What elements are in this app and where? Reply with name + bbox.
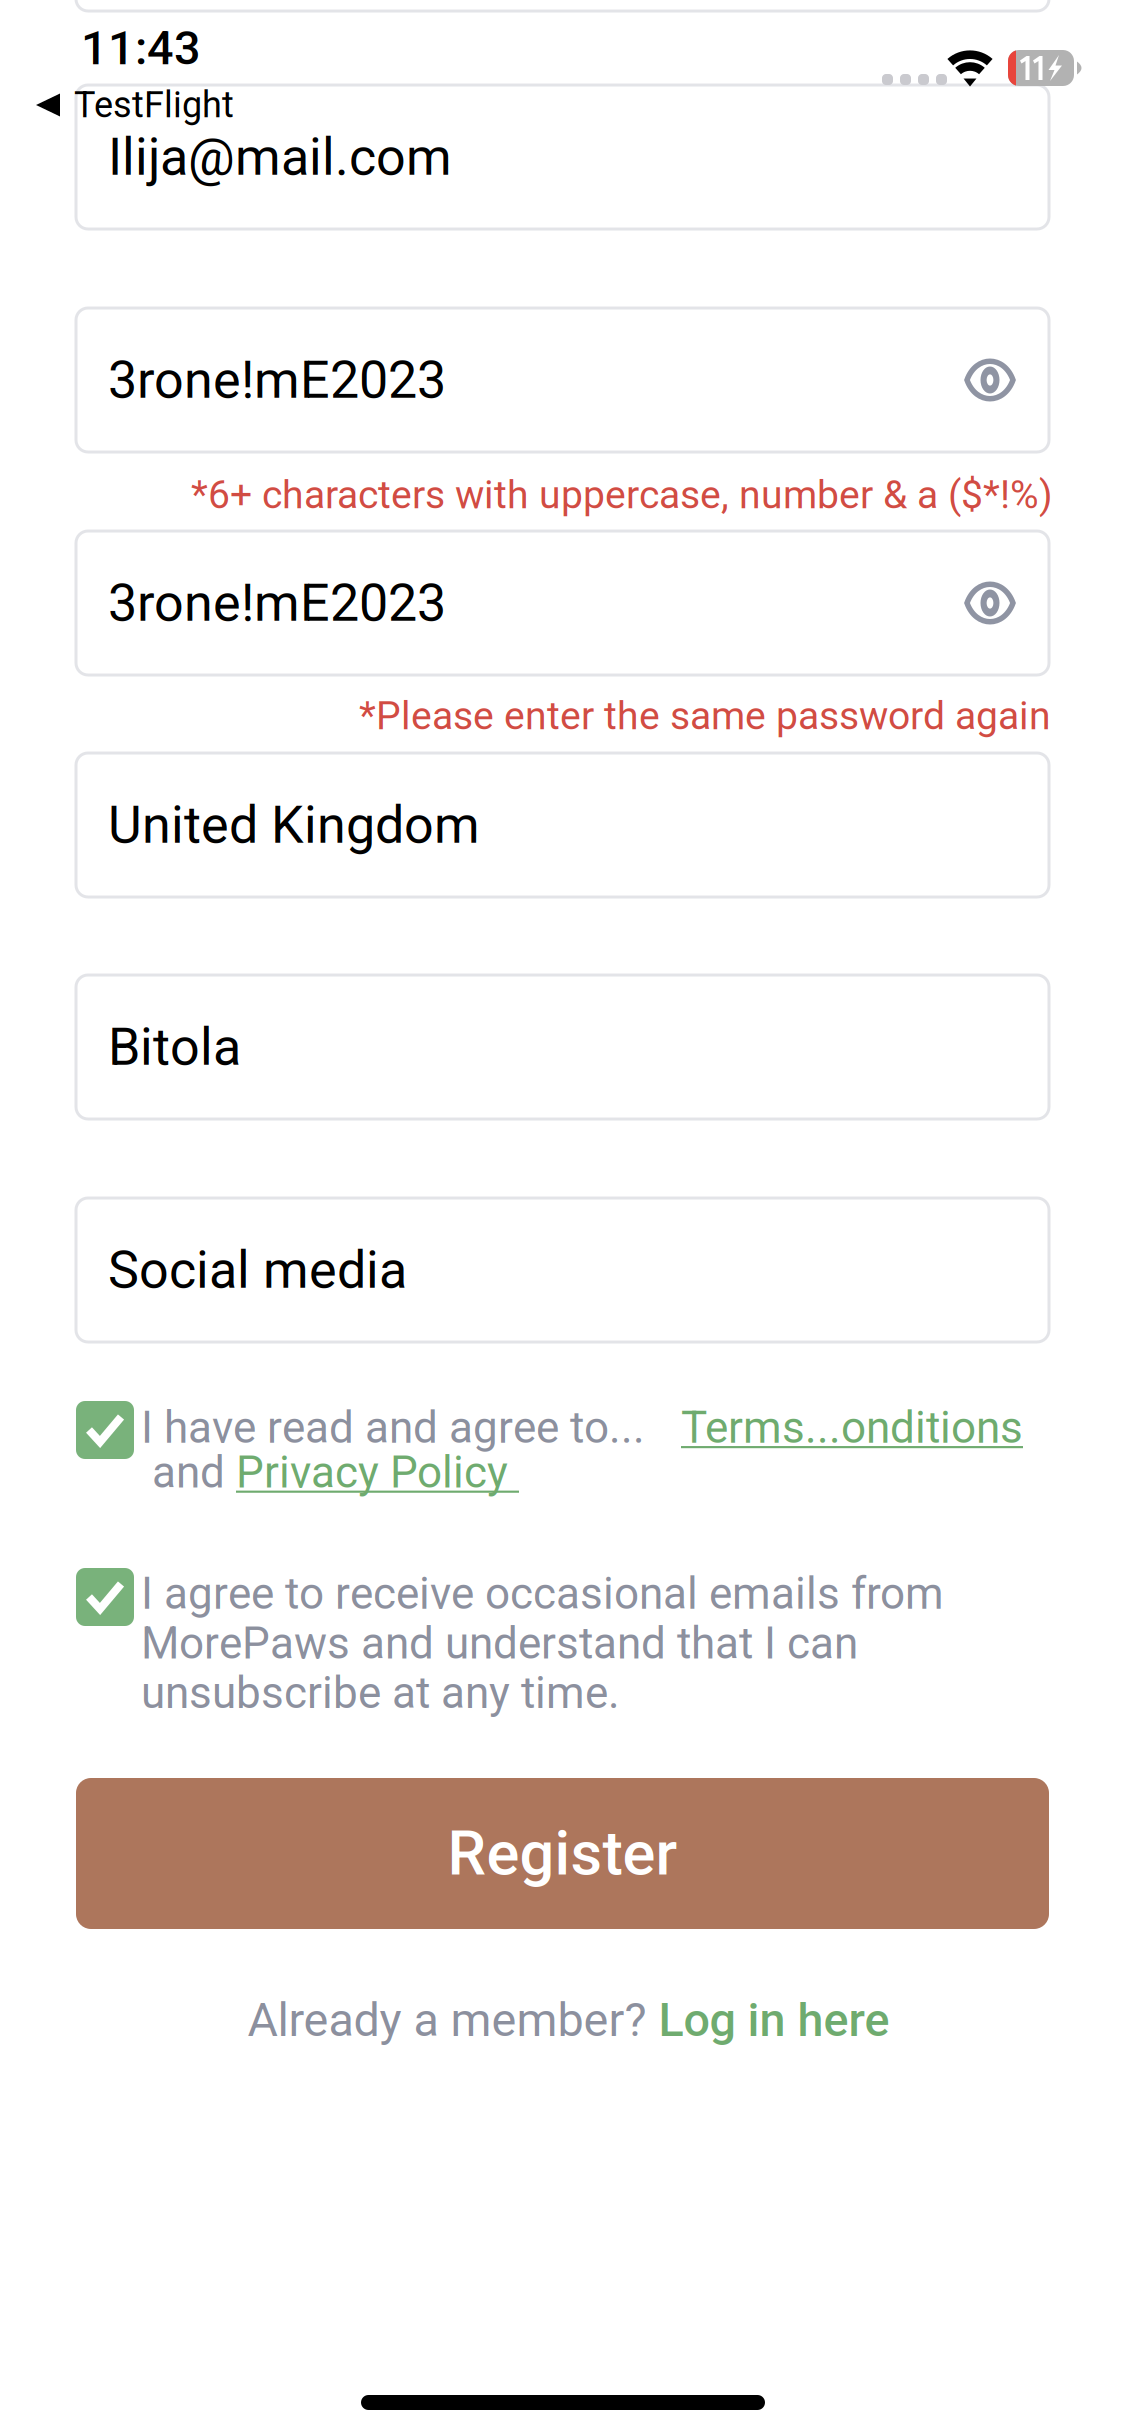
staticText: *Please enter the same password again (359, 693, 1051, 739)
button[interactable]: Already a member? (82, 1989, 1055, 2051)
staticText: Privacy Policy (236, 1447, 519, 1498)
staticText: and (141, 1447, 236, 1498)
staticText: I have read and agree to... (141, 1402, 645, 1454)
staticText: Terms...onditions (681, 1402, 1023, 1454)
staticText: MorePaws and understand that I can (141, 1618, 858, 1669)
staticText: Log in here (658, 1993, 889, 2047)
button[interactable]: Social media (76, 1198, 1049, 1342)
staticText: Register (447, 1818, 677, 1889)
button[interactable]: I have read and agree to... (76, 1401, 1049, 1498)
button[interactable] (76, 0, 1049, 11)
button[interactable]: TestFlight (36, 86, 296, 124)
staticText: I agree to receive occasional emails fro… (141, 1568, 944, 1620)
button[interactable]: I agree to receive occasional emails fro… (76, 1568, 1049, 1719)
staticText: 3rone!mE2023 (108, 572, 446, 633)
button[interactable]: 3rone!mE2023 (76, 531, 1049, 675)
staticText: TestFlight (74, 84, 234, 126)
button[interactable]: Ilija@mail.com (76, 85, 1049, 229)
staticText: Bitola (108, 1016, 241, 1077)
button[interactable]: 3rone!mE2023 (76, 308, 1049, 452)
staticText: 11:43 (81, 21, 201, 76)
staticText: United Kingdom (108, 794, 480, 855)
staticText: Already a member? (247, 1993, 658, 2047)
staticText: unsubscribe at any time. (141, 1667, 620, 1719)
staticText: *6+ characters with uppercase, number & … (191, 472, 1053, 518)
staticText: Social media (108, 1239, 407, 1300)
button[interactable]: United Kingdom (76, 753, 1049, 897)
button[interactable]: Register (76, 1778, 1049, 1929)
staticText: Ilija@mail.com (108, 126, 452, 187)
button[interactable]: Bitola (76, 975, 1049, 1119)
staticText: 3rone!mE2023 (108, 349, 446, 410)
